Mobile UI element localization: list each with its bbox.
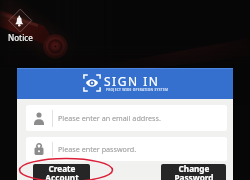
staticText: Notice <box>8 32 33 43</box>
button[interactable]: Create Account <box>33 164 90 180</box>
button[interactable]: Please enter an email address. <box>26 105 227 131</box>
staticText: Create Account <box>45 164 79 180</box>
button[interactable]: Notice <box>2 6 38 42</box>
staticText: PROJECT WIDE OPERATION SYSTEM <box>106 88 169 92</box>
staticText: Please enter password. <box>58 144 137 154</box>
button[interactable]: Change Password <box>161 164 226 180</box>
staticText: Please enter an email address. <box>58 113 161 123</box>
staticText: Change Password <box>174 164 214 180</box>
staticText: SIGN IN <box>104 73 160 89</box>
button[interactable]: Please enter password. <box>26 137 227 161</box>
